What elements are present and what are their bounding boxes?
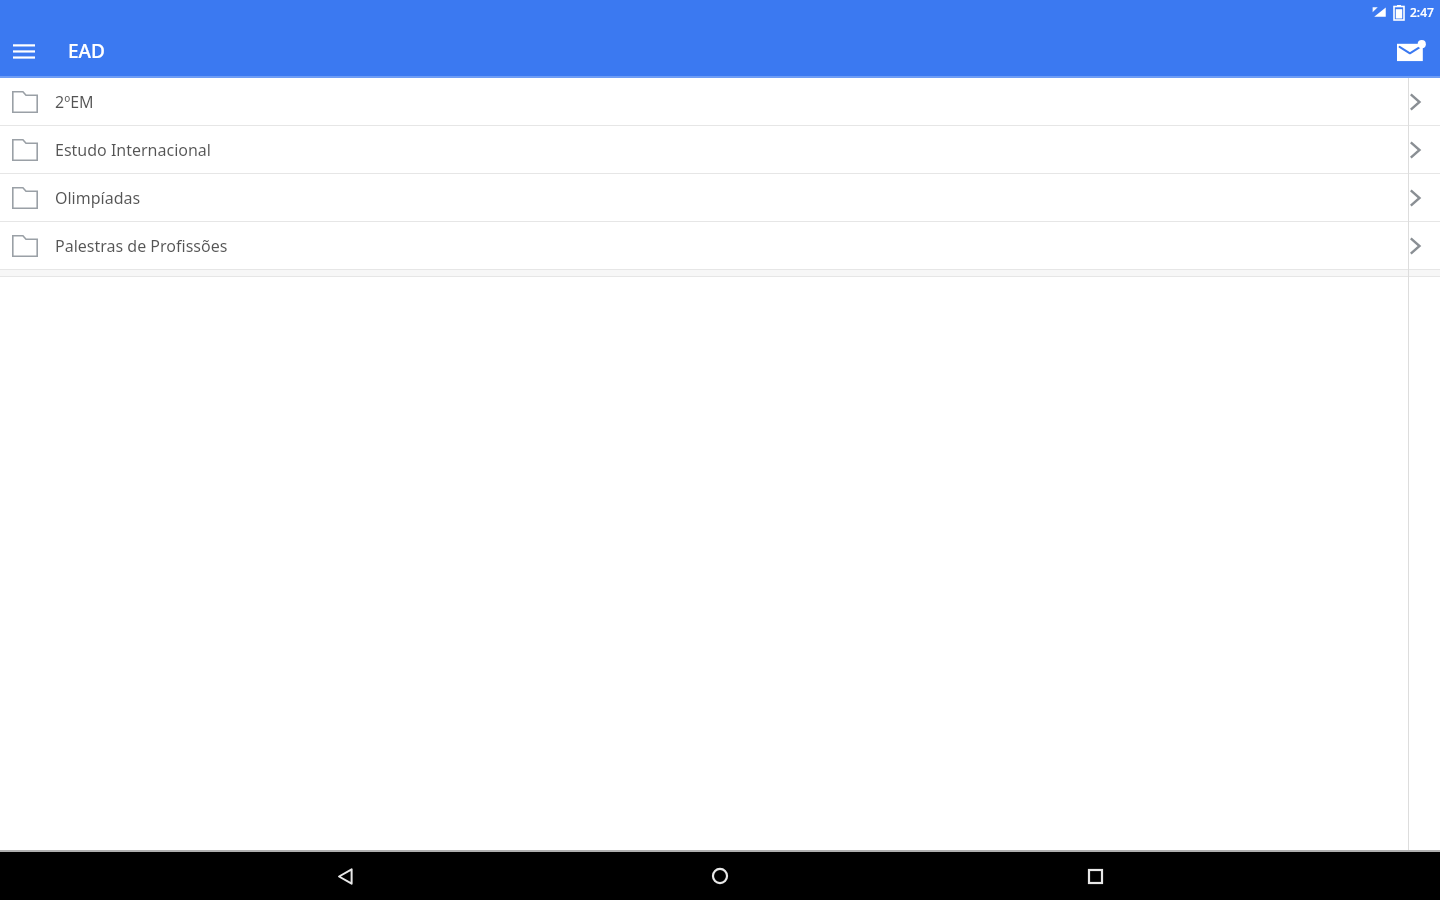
button[interactable]: Olimpíadas (0, 174, 1440, 221)
staticText: Olimpíadas (55, 187, 1408, 209)
staticText: Estudo Internacional (55, 139, 1408, 161)
button[interactable]: Palestras de Profissões (0, 222, 1440, 269)
staticText: 2ºEM (55, 91, 1408, 113)
button[interactable]: Messages (1390, 29, 1434, 73)
staticText: 2:47 (1410, 4, 1434, 20)
button[interactable]: Open navigation drawer (4, 31, 44, 71)
button[interactable]: Home (690, 852, 750, 900)
button[interactable]: Back (315, 852, 375, 900)
staticText: Palestras de Profissões (55, 235, 1408, 257)
staticText: EAD (68, 38, 105, 64)
button[interactable]: 2ºEM (0, 78, 1440, 125)
button[interactable]: Estudo Internacional (0, 126, 1440, 173)
button[interactable]: Recent apps (1065, 852, 1125, 900)
